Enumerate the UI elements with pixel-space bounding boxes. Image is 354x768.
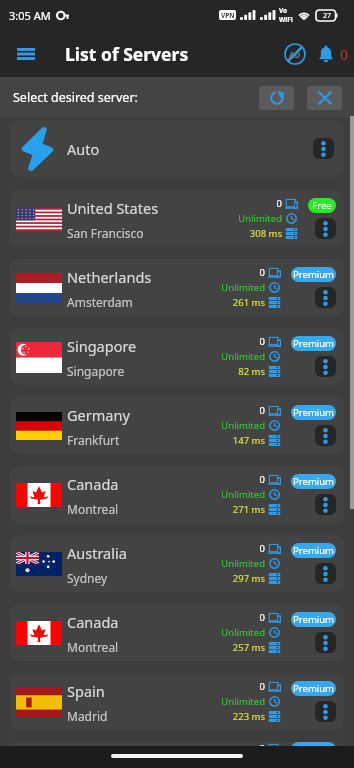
staticText: Premium [293,337,334,350]
button[interactable]: Premium [291,681,336,696]
staticText: Select desired server: [13,89,138,106]
staticText: Premium [293,743,334,756]
staticText: 223 ms [232,710,265,723]
staticText: Spain [67,681,105,701]
button[interactable]: 0 [10,742,344,768]
button[interactable]: More options [315,701,336,722]
staticText: Australia [67,543,127,563]
button[interactable]: Canada [10,604,344,661]
staticText: Unlimited [221,557,265,570]
button[interactable]: Canada [10,466,344,523]
staticText: 0 [259,473,265,486]
staticText: 271 ms [232,503,265,516]
button[interactable]: Free [308,198,336,213]
staticText: Unlimited [221,757,265,768]
staticText: 27 [323,11,332,21]
staticText: 308 ms [249,227,282,240]
button[interactable]: Auto [10,120,344,177]
staticText: List of Servers [65,42,189,66]
button[interactable]: Australia [10,535,344,592]
staticText: Frankfurt [67,432,120,448]
staticText: 3:05 AM [9,8,51,23]
button[interactable]: More options [315,425,336,446]
button[interactable]: Premium [291,612,336,627]
staticText: Premium [293,544,334,557]
staticText: Amsterdam [67,294,133,310]
staticText: Unlimited [221,419,265,432]
staticText: Unlimited [221,350,265,363]
staticText: United States [67,198,159,218]
staticText: Singapore [67,363,125,379]
staticText: 0 [259,742,265,755]
staticText: Premium [293,268,334,281]
button[interactable]: Singapore [10,328,344,385]
staticText: WiFi [279,15,293,24]
staticText: 0 [259,680,265,693]
staticText: VPN [221,11,235,20]
button[interactable]: More options [315,287,336,308]
staticText: 0 [259,404,265,417]
staticText: Unlimited [221,281,265,294]
button[interactable]: Premium [291,543,336,558]
staticText: Premium [293,475,334,488]
staticText: 261 ms [232,296,265,309]
staticText: Premium [293,682,334,695]
button[interactable]: More options [315,632,336,653]
staticText: Unlimited [238,212,282,225]
staticText: Unlimited [221,488,265,501]
staticText: 0 [259,266,265,279]
staticText: Free [312,199,332,212]
staticText: 147 ms [232,434,265,447]
button[interactable]: United States [10,190,344,247]
staticText: Netherlands [67,267,152,287]
button[interactable]: Close [307,86,342,110]
button[interactable]: More options [315,356,336,377]
staticText: Premium [293,406,334,419]
staticText: AD [289,49,301,60]
button[interactable]: Open navigation menu [9,37,42,70]
button[interactable]: Netherlands [10,259,344,316]
staticText: Canada [67,612,119,632]
staticText: Montreal [67,501,119,517]
staticText: Unlimited [221,626,265,639]
button[interactable]: Premium [291,405,336,420]
button[interactable]: Refresh [259,86,294,110]
staticText: Vo [279,6,288,15]
staticText: 0 [259,611,265,624]
button[interactable]: Premium [291,267,336,282]
staticText: 297 ms [232,572,265,585]
staticText: Montreal [67,639,119,655]
staticText: 0 [276,197,282,210]
staticText: Germany [67,405,130,425]
button[interactable]: Spain [10,673,344,730]
button[interactable]: Ad block [280,39,310,69]
staticText: Unlimited [221,695,265,708]
staticText: Auto [67,139,100,159]
staticText: 82 ms [238,365,265,378]
button[interactable]: More options [315,494,336,515]
staticText: Premium [293,613,334,626]
staticText: 0 [340,45,349,64]
button[interactable]: More options [315,218,336,239]
staticText: 0 [259,542,265,555]
button[interactable]: More options [313,138,334,159]
staticText: Canada [67,474,119,494]
button[interactable]: Premium [291,336,336,351]
staticText: Madrid [67,708,108,724]
button[interactable]: Germany [10,397,344,454]
staticText: 257 ms [232,641,265,654]
button[interactable]: Premium [291,742,336,757]
button[interactable]: More options [315,563,336,584]
button[interactable]: Notifications, 0 new [319,45,349,64]
staticText: 0 [259,335,265,348]
staticText: Sydney [67,570,108,586]
staticText: San Francisco [67,225,144,241]
staticText: Singapore [67,336,137,356]
button[interactable]: Premium [291,474,336,489]
